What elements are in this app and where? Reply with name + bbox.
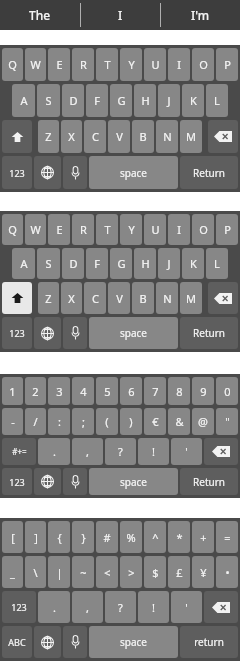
button[interactable]: ,	[72, 591, 103, 623]
button[interactable]: U	[144, 48, 166, 81]
button[interactable]: A	[12, 84, 35, 117]
button[interactable]: N	[156, 282, 178, 314]
button[interactable]: D	[62, 84, 84, 117]
button[interactable]: B	[132, 282, 154, 314]
button[interactable]: *	[168, 521, 190, 553]
button[interactable]: J	[158, 84, 180, 117]
button[interactable]: >	[120, 556, 142, 588]
button[interactable]: $	[144, 556, 166, 588]
button[interactable]: 123	[2, 156, 32, 189]
button[interactable]: O	[192, 48, 214, 81]
button[interactable]: 123	[2, 317, 32, 349]
button[interactable]: <	[96, 556, 118, 588]
button[interactable]: space	[89, 468, 178, 495]
button[interactable]: #	[96, 521, 118, 553]
button[interactable]: X	[61, 282, 82, 314]
button[interactable]: !	[138, 591, 169, 623]
button[interactable]: @	[192, 408, 214, 435]
button[interactable]: U	[144, 214, 166, 245]
button[interactable]: 7	[144, 377, 166, 405]
button[interactable]: 9	[192, 377, 214, 405]
button[interactable]: Delete	[208, 120, 238, 153]
button[interactable]: .	[38, 438, 70, 465]
button[interactable]: :	[48, 408, 70, 435]
button[interactable]: Next keyboard	[34, 468, 61, 495]
button[interactable]: I	[168, 214, 190, 245]
button[interactable]: .	[38, 591, 70, 623]
button[interactable]: Q	[2, 214, 23, 245]
button[interactable]: S	[37, 84, 60, 117]
button[interactable]: €	[144, 408, 166, 435]
button[interactable]: 123	[2, 468, 32, 495]
button[interactable]: /	[25, 408, 46, 435]
button[interactable]: Dictation	[63, 626, 87, 658]
button[interactable]: M	[180, 120, 202, 153]
button[interactable]: Shift	[2, 282, 32, 314]
button[interactable]: \	[25, 556, 46, 588]
button[interactable]: Shift	[2, 120, 32, 153]
button[interactable]: 6	[120, 377, 142, 405]
button[interactable]: 5	[96, 377, 118, 405]
button[interactable]: O	[192, 214, 214, 245]
button[interactable]: "	[216, 408, 238, 435]
button[interactable]: Dictation	[63, 468, 87, 495]
button[interactable]: J	[158, 248, 180, 279]
button[interactable]: space	[89, 317, 178, 349]
button[interactable]: •	[216, 556, 238, 588]
button[interactable]: A	[12, 248, 35, 279]
button[interactable]: W	[25, 214, 46, 245]
button[interactable]: return	[180, 626, 238, 658]
button[interactable]: L	[206, 248, 228, 279]
button[interactable]: Delete	[204, 438, 238, 465]
button[interactable]: }	[72, 521, 94, 553]
button[interactable]: ?	[105, 591, 136, 623]
button[interactable]: Next keyboard	[34, 317, 61, 349]
button[interactable]: !	[138, 438, 169, 465]
button[interactable]: R	[72, 48, 94, 81]
button[interactable]: L	[206, 84, 228, 117]
button[interactable]: -	[2, 408, 23, 435]
button[interactable]: N	[156, 120, 178, 153]
button[interactable]: F	[86, 84, 108, 117]
button[interactable]: Return	[180, 468, 238, 495]
button[interactable]: Dictation	[63, 317, 87, 349]
button[interactable]: 8	[168, 377, 190, 405]
button[interactable]: [	[2, 521, 23, 553]
button[interactable]: )	[120, 408, 142, 435]
button[interactable]: B	[132, 120, 154, 153]
button[interactable]: £	[168, 556, 190, 588]
button[interactable]: Delete	[204, 591, 238, 623]
button[interactable]: W	[25, 48, 46, 81]
button[interactable]: '	[171, 438, 202, 465]
button[interactable]: I	[81, 0, 160, 30]
button[interactable]: Z	[38, 120, 59, 153]
button[interactable]: I'm	[161, 0, 240, 30]
button[interactable]: X	[61, 120, 82, 153]
button[interactable]: +	[192, 521, 214, 553]
button[interactable]: K	[182, 84, 204, 117]
button[interactable]: Y	[120, 48, 142, 81]
button[interactable]: P	[216, 48, 238, 81]
button[interactable]: S	[37, 248, 60, 279]
button[interactable]: ]	[25, 521, 46, 553]
button[interactable]: ¥	[192, 556, 214, 588]
button[interactable]: Return	[180, 317, 238, 349]
button[interactable]: ABC	[2, 626, 32, 658]
button[interactable]: 2	[25, 377, 46, 405]
button[interactable]: C	[84, 282, 106, 314]
button[interactable]: K	[182, 248, 204, 279]
button[interactable]: Next keyboard	[34, 156, 61, 189]
button[interactable]: T	[96, 48, 118, 81]
button[interactable]: '	[171, 591, 202, 623]
button[interactable]: Return	[180, 156, 238, 189]
button[interactable]: ,	[72, 438, 103, 465]
button[interactable]: F	[86, 248, 108, 279]
button[interactable]: {	[48, 521, 70, 553]
button[interactable]: Dictation	[63, 156, 87, 189]
button[interactable]: Q	[2, 48, 23, 81]
button[interactable]: V	[108, 282, 130, 314]
button[interactable]: Delete	[208, 282, 238, 314]
button[interactable]: P	[216, 214, 238, 245]
button[interactable]: G	[110, 248, 132, 279]
button[interactable]: I	[168, 48, 190, 81]
